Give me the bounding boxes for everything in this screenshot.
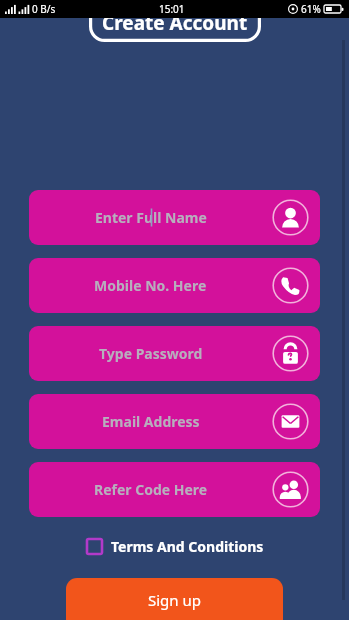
other: PERSON	[272, 199, 309, 236]
staticText: Terms And Conditions	[111, 537, 264, 556]
other: LOCK	[272, 335, 309, 372]
button[interactable]: Mobile No. Here	[29, 258, 320, 313]
staticText: 15:01	[159, 2, 185, 16]
button[interactable]: Refer Code Here	[29, 462, 320, 517]
staticText: Type Password	[99, 344, 203, 363]
other: MAIL	[272, 403, 309, 440]
staticText: Refer Code Here	[94, 480, 208, 499]
staticText: Mobile No. Here	[94, 276, 207, 295]
other: REFER	[272, 471, 309, 508]
other: PHONE	[272, 267, 309, 304]
staticText: Create Account	[102, 10, 248, 36]
button[interactable]: Create Account	[89, 1, 261, 42]
staticText: Sign up	[148, 590, 201, 610]
button[interactable]: Type Password	[29, 326, 320, 381]
button[interactable]: Sign up	[66, 578, 283, 620]
staticText: 61%	[301, 2, 321, 16]
button[interactable]: Email Address	[29, 394, 320, 449]
staticText: Enter Full Name	[95, 208, 207, 227]
button[interactable]: Terms And Conditions	[86, 537, 264, 556]
staticText: 0 B/s	[32, 2, 56, 16]
button[interactable]: Enter Full Name	[29, 190, 320, 245]
staticText: Email Address	[102, 412, 200, 431]
